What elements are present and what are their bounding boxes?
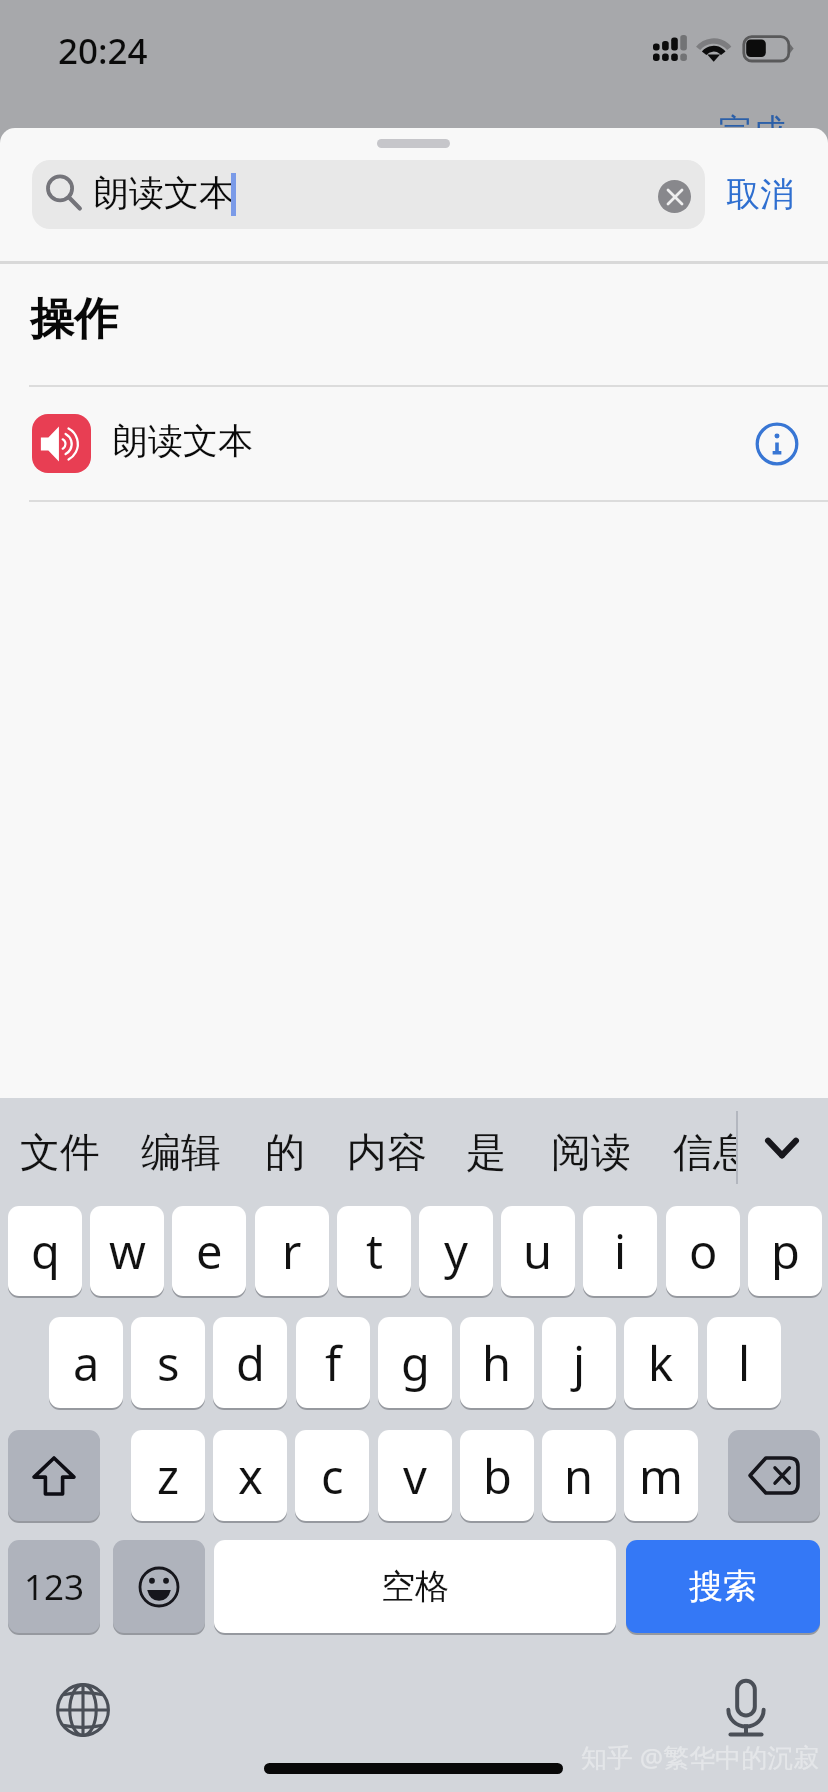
button[interactable]: Clear text: [658, 180, 691, 213]
staticText: l: [738, 1331, 751, 1395]
button[interactable]: v: [378, 1430, 452, 1521]
staticText: f: [325, 1331, 342, 1395]
button[interactable]: 阅读: [551, 1127, 631, 1177]
button[interactable]: 编辑: [141, 1127, 221, 1177]
button[interactable]: Backspace: [728, 1430, 820, 1521]
button[interactable]: Emoji: [113, 1540, 205, 1633]
button[interactable]: r: [255, 1206, 329, 1296]
staticText: j: [573, 1331, 586, 1395]
button[interactable]: 文件: [20, 1127, 100, 1177]
staticText: v: [403, 1444, 427, 1508]
button[interactable]: u: [501, 1206, 575, 1296]
staticText: p: [771, 1219, 800, 1283]
staticText: 阅读: [551, 1127, 631, 1177]
button[interactable]: 内容: [347, 1127, 427, 1177]
button[interactable]: g: [378, 1317, 452, 1408]
staticText: x: [238, 1444, 263, 1508]
staticText: r: [282, 1219, 302, 1283]
button[interactable]: 的: [265, 1127, 305, 1177]
staticText: 的: [265, 1127, 305, 1177]
button[interactable]: Dictate: [718, 1678, 774, 1738]
staticText: 搜索: [689, 1565, 757, 1608]
button[interactable]: 朗读文本: [0, 386, 828, 499]
button[interactable]: Info: [748, 415, 806, 473]
button[interactable]: x: [213, 1430, 287, 1521]
button[interactable]: a: [49, 1317, 123, 1408]
button[interactable]: i: [583, 1206, 657, 1296]
staticText: c: [321, 1444, 344, 1508]
button[interactable]: f: [296, 1317, 370, 1408]
staticText: k: [648, 1331, 674, 1395]
staticText: y: [444, 1219, 468, 1283]
button[interactable]: k: [624, 1317, 698, 1408]
staticText: 文件: [20, 1127, 100, 1177]
staticText: o: [689, 1219, 718, 1283]
button[interactable]: j: [542, 1317, 616, 1408]
button[interactable]: Shift: [8, 1430, 100, 1521]
button[interactable]: c: [295, 1430, 369, 1521]
staticText: d: [236, 1331, 265, 1395]
button[interactable]: o: [666, 1206, 740, 1296]
staticText: a: [73, 1331, 100, 1395]
button[interactable]: 取消: [712, 160, 807, 229]
staticText: g: [401, 1331, 430, 1395]
staticText: 123: [24, 1563, 85, 1611]
button[interactable]: w: [90, 1206, 164, 1296]
staticText: 朗读文本: [94, 171, 234, 215]
staticText: 信息: [673, 1127, 737, 1177]
staticText: 知乎 @繁华中的沉寂: [581, 1739, 820, 1775]
staticText: 完成: [718, 110, 786, 153]
staticText: 内容: [347, 1127, 427, 1177]
staticText: 是: [466, 1127, 506, 1177]
staticText: n: [564, 1444, 594, 1508]
button[interactable]: e: [172, 1206, 246, 1296]
staticText: 朗读文本: [113, 419, 253, 463]
button[interactable]: 是: [466, 1127, 506, 1177]
button[interactable]: p: [748, 1206, 822, 1296]
button[interactable]: s: [131, 1317, 205, 1408]
staticText: 操作: [30, 292, 118, 347]
staticText: w: [109, 1219, 146, 1283]
staticText: s: [157, 1331, 180, 1395]
staticText: 空格: [381, 1565, 449, 1608]
button[interactable]: q: [8, 1206, 82, 1296]
button[interactable]: y: [419, 1206, 493, 1296]
button[interactable]: z: [131, 1430, 205, 1521]
staticText: 20:24: [58, 27, 148, 75]
staticText: m: [639, 1444, 683, 1508]
button[interactable]: 空格: [214, 1540, 616, 1633]
button[interactable]: 朗读文本: [32, 160, 705, 229]
staticText: t: [366, 1219, 383, 1283]
button[interactable]: l: [707, 1317, 781, 1408]
button[interactable]: 信息: [673, 1127, 737, 1177]
staticText: 取消: [726, 173, 794, 216]
button[interactable]: 123: [8, 1540, 100, 1633]
staticText: e: [196, 1219, 223, 1283]
staticText: b: [483, 1444, 512, 1508]
staticText: i: [614, 1219, 627, 1283]
button[interactable]: Change keyboard: [55, 1682, 111, 1738]
button[interactable]: m: [624, 1430, 698, 1521]
button[interactable]: h: [460, 1317, 534, 1408]
staticText: h: [482, 1331, 512, 1395]
button[interactable]: d: [213, 1317, 287, 1408]
button[interactable]: n: [542, 1430, 616, 1521]
button[interactable]: Hide suggestions: [751, 1120, 813, 1176]
button[interactable]: 搜索: [626, 1540, 820, 1633]
staticText: 编辑: [141, 1127, 221, 1177]
staticText: z: [157, 1444, 180, 1508]
button[interactable]: b: [460, 1430, 534, 1521]
button[interactable]: t: [337, 1206, 411, 1296]
staticText: q: [31, 1219, 60, 1283]
staticText: u: [523, 1219, 553, 1283]
